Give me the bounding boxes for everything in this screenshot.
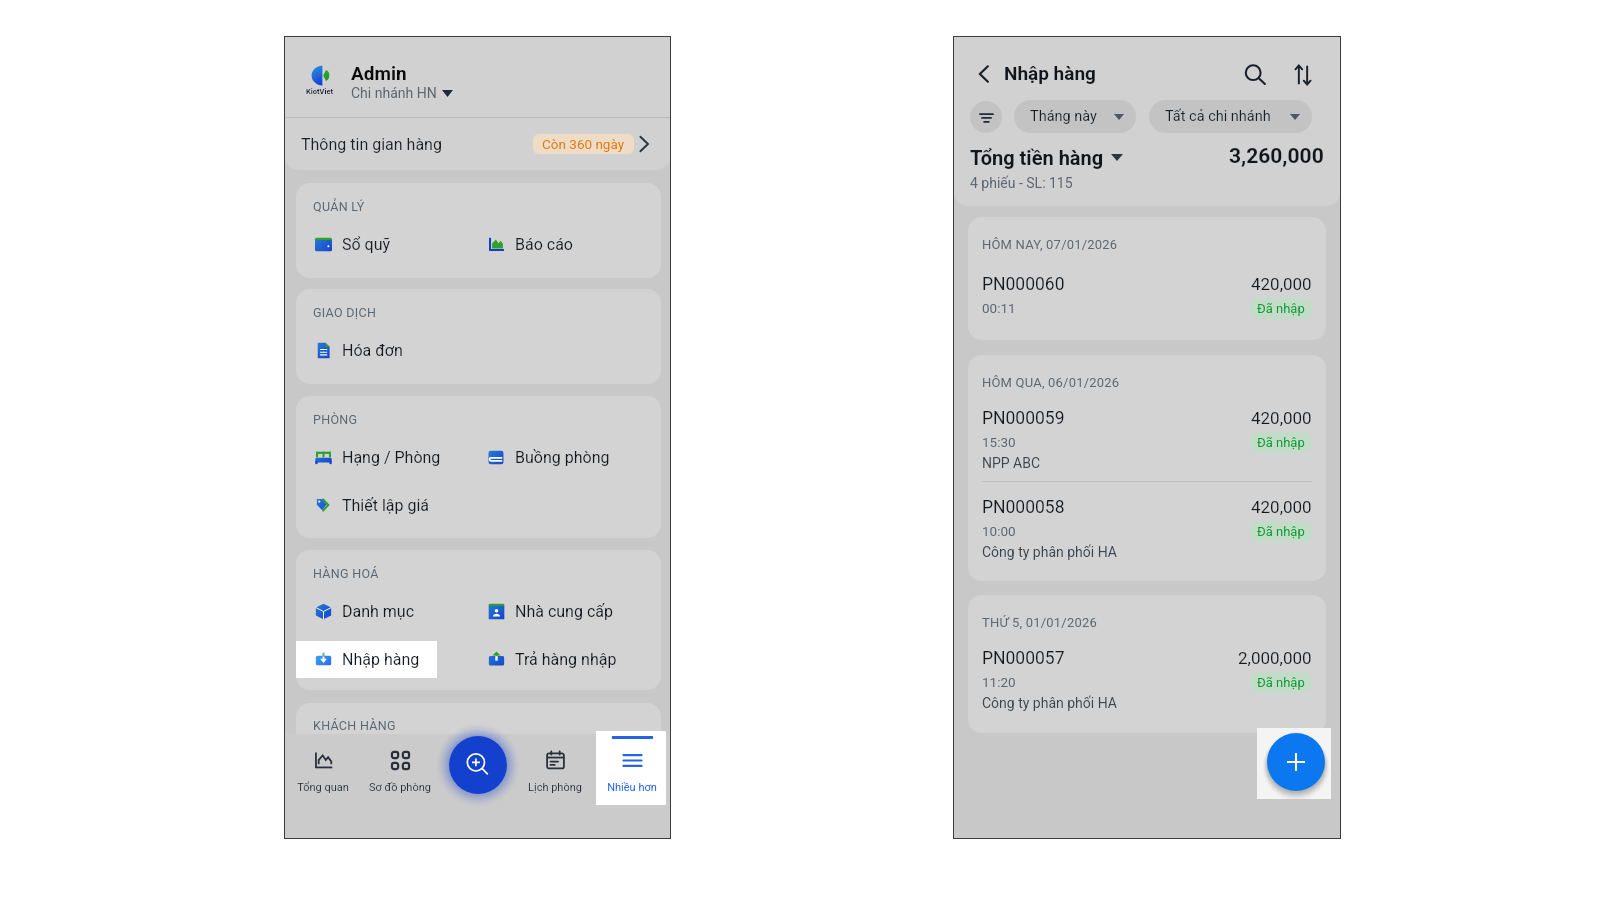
staticText: 4 phiếu - SL: 115 — [970, 175, 1073, 191]
staticText: 420,000 — [1251, 497, 1312, 517]
staticText: Nhiều hơn — [607, 781, 657, 794]
staticText: 3,260,000 — [1229, 144, 1324, 169]
staticText: Đã nhập — [1257, 675, 1305, 690]
staticText: Nhà cung cấp — [515, 602, 613, 621]
staticText: PN000059 — [982, 408, 1065, 429]
staticText: Công ty phân phối HA — [982, 695, 1117, 711]
button[interactable]: Hóa đơn — [296, 332, 478, 368]
staticText: Nhập hàng — [342, 650, 420, 669]
staticText: Trả hàng nhập — [515, 650, 617, 669]
staticText: Sổ quỹ — [342, 235, 391, 254]
staticText: PN000058 — [982, 497, 1065, 518]
button[interactable]: Trả hàng nhập — [478, 641, 661, 677]
staticText: Buồng phòng — [515, 448, 610, 467]
button[interactable]: Buồng phòng — [478, 439, 661, 475]
staticText: Tổng tiền hàng — [970, 146, 1104, 169]
button[interactable]: Thêm phiếu nhập — [1267, 733, 1325, 791]
button[interactable]: Nhiều hơn — [597, 738, 667, 800]
staticText: 10:00 — [982, 523, 1016, 539]
staticText: Đã nhập — [1257, 435, 1305, 450]
button[interactable]: Thông tin gian hàng — [284, 118, 671, 170]
button[interactable]: Search — [1242, 62, 1268, 88]
staticText: HÔM NAY, 07/01/2026 — [982, 237, 1118, 252]
staticText: PN000060 — [982, 274, 1065, 295]
staticText: Hóa đơn — [342, 341, 403, 360]
button[interactable]: PN000059 — [968, 408, 1326, 482]
button[interactable]: Danh mục — [296, 593, 478, 629]
staticText: Lịch phòng — [528, 781, 582, 794]
staticText: Hạng / Phòng — [342, 448, 441, 467]
staticText: QUẢN LÝ — [313, 199, 365, 214]
staticText: 11:20 — [982, 674, 1016, 690]
staticText: Đã nhập — [1257, 524, 1305, 539]
staticText: Công ty phân phối HA — [982, 544, 1117, 560]
staticText: Tổng quan — [297, 781, 349, 794]
button[interactable]: Hạng / Phòng — [296, 439, 478, 475]
staticText: KHÁCH HÀNG — [313, 718, 396, 733]
button[interactable]: Tổng quan — [288, 738, 358, 800]
button[interactable]: Thêm mới — [449, 736, 507, 794]
staticText: Nhập hàng — [1004, 62, 1096, 84]
button[interactable]: Thiết lập giá — [296, 487, 478, 523]
staticText: Admin — [351, 62, 407, 84]
button[interactable]: Nhà cung cấp — [478, 593, 661, 629]
staticText: KiotViet — [306, 87, 333, 96]
staticText: 2,000,000 — [1238, 648, 1312, 668]
staticText: GIAO DỊCH — [313, 305, 377, 320]
button[interactable] — [284, 36, 671, 117]
staticText: Đã nhập — [1257, 301, 1305, 316]
staticText: Thông tin gian hàng — [301, 135, 442, 154]
staticText: THỨ 5, 01/01/2026 — [982, 615, 1097, 630]
button[interactable]: Tháng này — [1014, 100, 1136, 133]
button[interactable]: Filter — [970, 101, 1002, 133]
button[interactable]: Tất cả chi nhánh — [1149, 100, 1312, 133]
button[interactable]: Lịch phòng — [520, 738, 590, 800]
staticText: HÔM QUA, 06/01/2026 — [982, 375, 1120, 390]
staticText: Báo cáo — [515, 235, 573, 254]
staticText: Sơ đồ phòng — [369, 781, 431, 794]
staticText: 420,000 — [1251, 274, 1312, 294]
staticText: Tháng này — [1030, 108, 1097, 125]
staticText: 00:11 — [982, 300, 1016, 316]
staticText: 420,000 — [1251, 408, 1312, 428]
staticText: Thiết lập giá — [342, 496, 430, 515]
staticText: Tất cả chi nhánh — [1165, 108, 1271, 125]
button[interactable]: Sơ đồ phòng — [365, 738, 435, 800]
button[interactable]: Nhập hàng — [296, 641, 478, 677]
staticText: 15:30 — [982, 434, 1016, 450]
staticText: PHÒNG — [313, 412, 358, 427]
button[interactable]: Sort — [1290, 62, 1316, 88]
button[interactable]: Báo cáo — [478, 226, 661, 262]
staticText: Chi nhánh HN — [351, 85, 437, 101]
staticText: PN000057 — [982, 648, 1065, 669]
button[interactable]: Sổ quỹ — [296, 226, 478, 262]
button[interactable]: Back — [972, 62, 996, 86]
button[interactable]: PN000060 — [968, 274, 1326, 326]
button[interactable]: PN000057 — [968, 648, 1326, 722]
staticText: Còn 360 ngày — [542, 136, 625, 152]
staticText: HÀNG HOÁ — [313, 566, 379, 581]
staticText: Danh mục — [342, 602, 415, 621]
staticText: NPP ABC — [982, 455, 1041, 471]
button[interactable] — [596, 731, 666, 805]
button[interactable]: PN000058 — [968, 497, 1326, 571]
